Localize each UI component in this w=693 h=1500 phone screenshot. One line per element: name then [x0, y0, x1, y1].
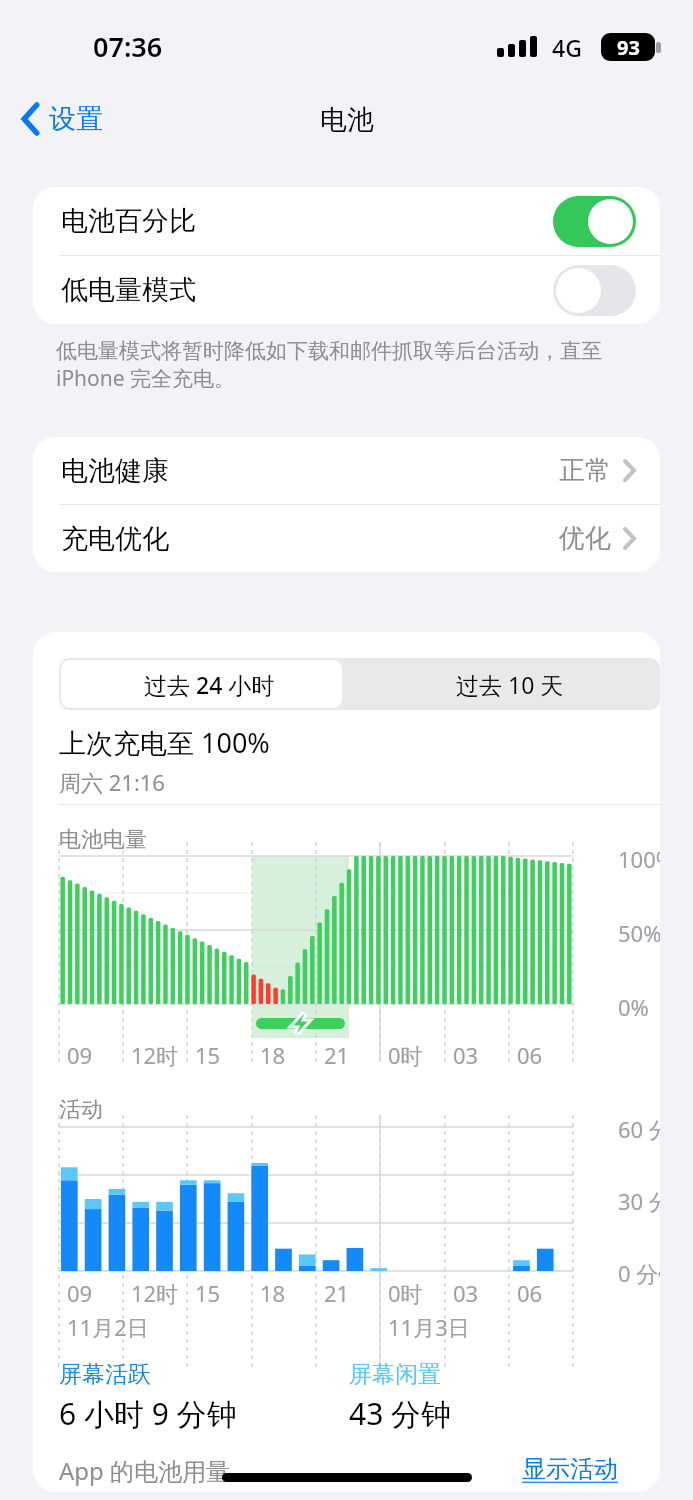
staticText: iPhone 完全充电。 [56, 364, 236, 393]
staticText: 11月3日 [388, 1312, 470, 1342]
staticText: 43 分钟 [349, 1393, 452, 1434]
staticText: 100% [618, 844, 660, 874]
staticText: 4G [552, 32, 582, 63]
button[interactable]: 显示活动 [522, 1454, 618, 1484]
staticText: 50% [618, 918, 660, 948]
staticText: 活动 [59, 1096, 103, 1124]
staticText: 21 [324, 1040, 350, 1070]
button[interactable]: 屏幕闲置 [349, 1360, 452, 1434]
staticText: 06 [517, 1278, 543, 1308]
staticText: 低电量模式 [61, 273, 196, 307]
staticText: 03 [453, 1278, 479, 1308]
staticText: 充电优化 [61, 522, 169, 556]
staticText: 低电量模式将暂时降低如下载和邮件抓取等后台活动，直至 [56, 338, 602, 364]
staticText: 优化 [559, 522, 611, 555]
staticText: 上次充电至 100% [59, 724, 270, 761]
staticText: 18 [260, 1040, 286, 1070]
staticText: 过去 24 小时 [144, 669, 275, 700]
button[interactable]: 电池健康 [33, 437, 660, 504]
staticText: 电池健康 [61, 454, 169, 488]
staticText: 0时 [388, 1040, 423, 1070]
button[interactable]: Switch on [553, 196, 636, 247]
staticText: 11月2日 [67, 1312, 149, 1342]
button[interactable]: 过去 24 小时 [59, 658, 359, 710]
staticText: 周六 21:16 [59, 767, 165, 797]
staticText: 屏幕闲置 [349, 1360, 441, 1389]
staticText: 设置 [49, 102, 103, 136]
staticText: 12时 [131, 1040, 179, 1070]
staticText: 07:36 [93, 28, 163, 65]
staticText: 09 [67, 1040, 93, 1070]
staticText: 03 [453, 1040, 479, 1070]
button[interactable]: Switch off [553, 265, 636, 316]
staticText: 6 小时 9 分钟 [59, 1393, 237, 1434]
staticText: 0% [618, 992, 649, 1022]
staticText: 电池 [320, 103, 374, 137]
button[interactable]: 过去 10 天 [359, 658, 660, 710]
staticText: 09 [67, 1278, 93, 1308]
staticText: 15 [195, 1040, 221, 1070]
staticText: 电池百分比 [61, 204, 196, 238]
button[interactable]: 屏幕活跃 [59, 1360, 349, 1434]
button[interactable]: 低电量模式 [33, 256, 660, 324]
staticText: 电池电量 [59, 826, 147, 854]
staticText: App 的电池用量 [59, 1454, 231, 1487]
staticText: 93 [617, 34, 640, 61]
button[interactable]: 充电优化 [33, 505, 660, 572]
staticText: 屏幕活跃 [59, 1360, 151, 1389]
staticText: 60 分钟 [618, 1114, 660, 1144]
staticText: 15 [195, 1278, 221, 1308]
staticText: 30 分钟 [618, 1186, 660, 1216]
staticText: 06 [517, 1040, 543, 1070]
staticText: 21 [324, 1278, 350, 1308]
button[interactable]: 设置 [16, 96, 109, 142]
staticText: 12时 [131, 1278, 179, 1308]
staticText: 18 [260, 1278, 286, 1308]
staticText: 0时 [388, 1278, 423, 1308]
button[interactable]: 电池百分比 [33, 187, 660, 255]
staticText: 正常 [559, 454, 611, 487]
staticText: 过去 10 天 [456, 669, 564, 700]
staticText: 0 分钟 [618, 1258, 660, 1288]
